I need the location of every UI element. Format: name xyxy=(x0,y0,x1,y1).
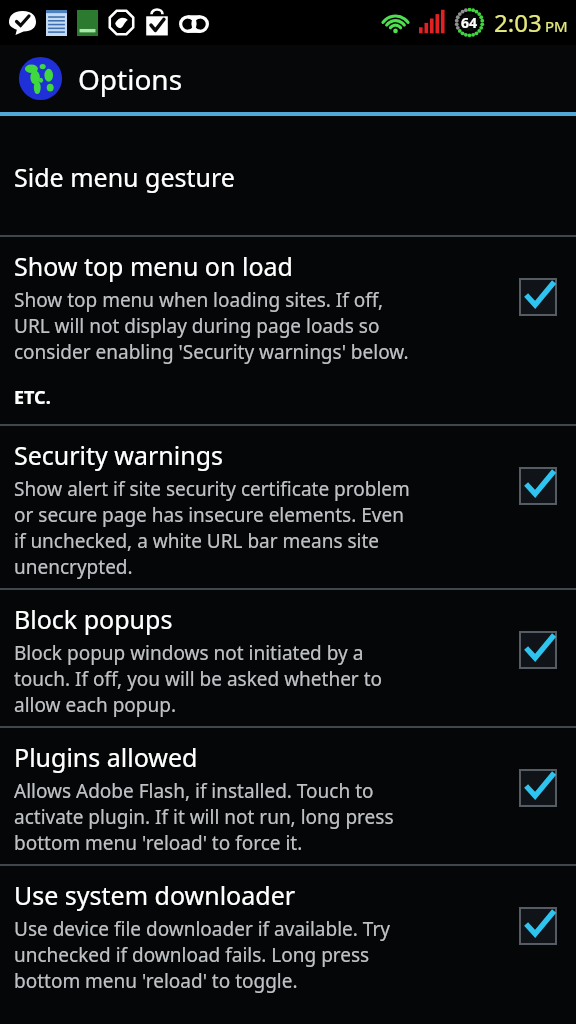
button[interactable]: Toggle setting xyxy=(520,908,556,944)
staticText: ETC. xyxy=(14,385,51,410)
staticText: Options xyxy=(78,60,183,98)
button[interactable]: Toggle setting xyxy=(520,468,556,504)
button[interactable]: Block popups xyxy=(0,590,576,726)
staticText: 2:03 xyxy=(494,6,542,39)
button[interactable]: Side menu gesture xyxy=(0,118,576,235)
staticText: Show alert if site security certificate … xyxy=(14,476,410,580)
staticText: Block popups xyxy=(14,602,173,636)
staticText: Block popup windows not initiated by a t… xyxy=(14,640,383,718)
staticText: Use system downloader xyxy=(14,878,296,912)
button[interactable]: Toggle setting xyxy=(520,770,556,806)
staticText: Plugins allowed xyxy=(14,740,198,774)
staticText: PM xyxy=(545,16,568,36)
staticText: Allows Adobe Flash, if installed. Touch … xyxy=(14,778,394,856)
staticText: Side menu gesture xyxy=(14,160,235,194)
staticText: Show top menu on load xyxy=(14,249,293,283)
staticText: Use device file downloader if available.… xyxy=(14,916,391,994)
staticText: 64 xyxy=(461,13,478,32)
staticText: Show top menu when loading sites. If off… xyxy=(14,287,409,365)
button[interactable]: Toggle setting xyxy=(520,279,556,315)
button[interactable]: Security warnings xyxy=(0,426,576,588)
staticText: Security warnings xyxy=(14,438,224,472)
button[interactable]: Plugins allowed xyxy=(0,728,576,864)
button[interactable]: Use system downloader xyxy=(0,866,576,1002)
button[interactable]: Toggle setting xyxy=(520,632,556,668)
button[interactable]: Show top menu on load xyxy=(0,237,576,424)
